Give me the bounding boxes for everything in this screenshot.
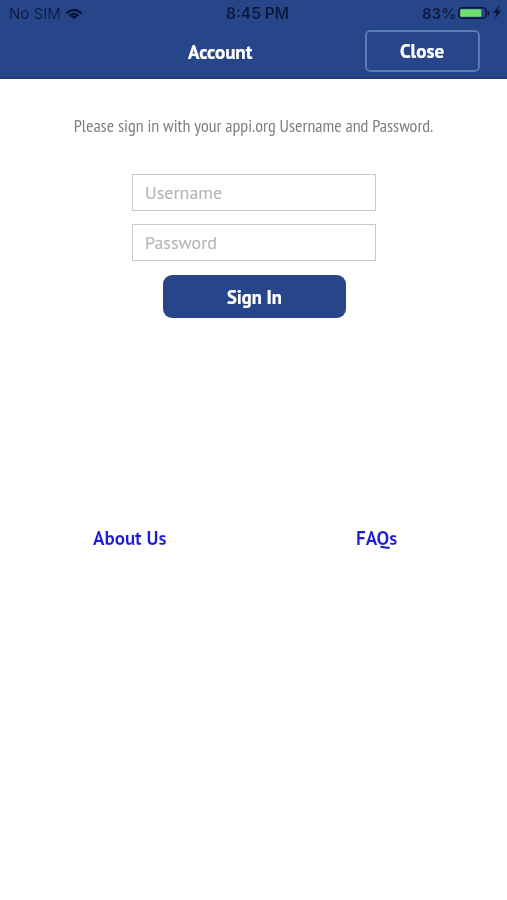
button[interactable]: FAQs — [346, 516, 408, 561]
other: Charging — [493, 5, 501, 19]
staticText: FAQs — [356, 526, 398, 551]
button[interactable]: Password — [132, 224, 376, 261]
staticText: 83% — [422, 4, 457, 22]
other: Battery 83 percent — [458, 7, 490, 19]
staticText: 8:45 PM — [226, 4, 290, 23]
button[interactable]: Sign In — [163, 275, 346, 318]
staticText: Please sign in with your appi.org Userna… — [0, 114, 507, 137]
staticText: No SIM — [9, 4, 61, 22]
staticText: Sign In — [227, 285, 282, 309]
staticText: Password — [145, 231, 217, 254]
staticText: Username — [145, 181, 223, 204]
button[interactable]: Username — [132, 174, 376, 211]
staticText: About Us — [93, 526, 167, 551]
button[interactable]: Close — [365, 30, 480, 72]
button[interactable]: About Us — [83, 516, 177, 561]
other: Wi-Fi signal — [64, 6, 84, 20]
staticText: Close — [400, 39, 445, 64]
staticText: Account — [188, 40, 253, 65]
